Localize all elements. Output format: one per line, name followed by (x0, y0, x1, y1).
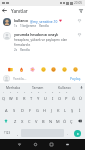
button[interactable]: 5 (28, 91, 35, 103)
button[interactable]: 0 (63, 91, 70, 103)
button[interactable]: Back (0, 6, 9, 15)
staticText: H (43, 108, 46, 113)
button[interactable]: yorumda hesabınızı onaylı (0, 30, 85, 54)
button[interactable]: F (26, 103, 34, 115)
button[interactable]: Back (11, 139, 27, 150)
button[interactable]: Tamam (25, 83, 51, 91)
staticText: @my_sensitive.10 (30, 19, 58, 23)
button[interactable]: Emoji (61, 66, 67, 72)
button[interactable]: Recents (43, 139, 59, 150)
button[interactable]: Ğ (70, 91, 77, 103)
staticText: 5 (31, 91, 33, 94)
button[interactable]: Emoji (50, 66, 56, 72)
staticText: G (36, 108, 39, 113)
button[interactable]: Emoji (72, 66, 78, 72)
button[interactable]: H (41, 103, 48, 115)
staticText: 1 (3, 91, 5, 94)
staticText: . (67, 131, 69, 136)
staticText: Tamam (32, 85, 44, 89)
button[interactable]: 2 (7, 91, 14, 103)
staticText: kullanıcı (14, 18, 29, 23)
button[interactable]: B (40, 115, 47, 127)
button[interactable]: Voice input (77, 83, 85, 91)
staticText: N (49, 119, 53, 124)
staticText: ?123 (4, 131, 11, 135)
staticText: hesaplara, yüksek ve paylaşımı olan (14, 38, 68, 42)
staticText: A (5, 108, 8, 113)
button[interactable]: İ (76, 103, 83, 115)
staticText: , (17, 131, 19, 136)
staticText: D (21, 108, 24, 113)
button[interactable]: Backspace (75, 115, 85, 127)
button[interactable]: Paylaş (69, 75, 82, 82)
button[interactable]: ?123 (1, 127, 14, 139)
button[interactable]: Filter (76, 6, 85, 15)
button[interactable]: S (10, 103, 18, 115)
button[interactable]: Like (77, 18, 82, 23)
button[interactable]: G (34, 103, 41, 115)
button[interactable]: Emoji (7, 66, 13, 72)
staticText: İ (79, 108, 81, 113)
button[interactable]: Emoji (18, 66, 24, 72)
button[interactable]: Shift (0, 115, 11, 127)
staticText: B (42, 119, 45, 124)
staticText: yorumda hesabınızı onaylı (14, 32, 59, 37)
staticText: Ç (70, 119, 73, 124)
button[interactable]: Comma (14, 127, 21, 139)
button[interactable]: Home (27, 139, 43, 150)
button[interactable]: V (33, 115, 40, 127)
button[interactable]: Emoji (40, 66, 46, 72)
staticText: Kullanıcı (58, 85, 71, 89)
button[interactable]: C (26, 115, 33, 127)
button[interactable]: J (48, 103, 55, 115)
staticText: M (56, 119, 60, 124)
staticText: Ö (63, 119, 67, 124)
button[interactable]: Ö (61, 115, 68, 127)
button[interactable]: Emoji (29, 66, 35, 72)
button[interactable]: A (2, 103, 10, 115)
button[interactable]: kullanıcı (0, 16, 85, 30)
button[interactable]: 7 (42, 91, 49, 103)
staticText: E (16, 96, 19, 101)
staticText: Q (2, 96, 6, 101)
staticText: Yanıtla... (13, 76, 69, 81)
staticText: 9 (59, 91, 61, 94)
staticText: 6 (38, 91, 40, 94)
button[interactable]: 9 (56, 91, 63, 103)
button[interactable]: Ü (77, 91, 84, 103)
staticText: F (29, 108, 32, 113)
button[interactable]: K (55, 103, 62, 115)
staticText: X (21, 119, 24, 124)
button[interactable]: N (47, 115, 54, 127)
staticText: 8 (52, 91, 54, 94)
button[interactable]: Ş (69, 103, 76, 115)
staticText: K (57, 108, 60, 113)
staticText: Paylaş (70, 76, 81, 81)
staticText: J (51, 108, 53, 113)
button[interactable]: L (62, 103, 69, 115)
staticText: Ğ (72, 96, 75, 101)
staticText: Y (37, 96, 40, 101)
staticText: 20:05 (74, 1, 83, 5)
button[interactable]: 3 (14, 91, 21, 103)
button[interactable]: M (54, 115, 61, 127)
button[interactable]: Ç (68, 115, 75, 127)
button[interactable]: 4 (21, 91, 28, 103)
staticText: 1s (14, 24, 18, 28)
staticText: I (52, 96, 54, 101)
button[interactable]: Send (71, 127, 84, 139)
button[interactable]: X (19, 115, 26, 127)
button[interactable]: Z (11, 115, 19, 127)
button[interactable]: D (18, 103, 26, 115)
staticText: P (65, 96, 68, 101)
button[interactable]: 6 (35, 91, 42, 103)
button[interactable]: 1 (1, 91, 7, 103)
button[interactable]: 8 (49, 91, 56, 103)
button[interactable]: Kullanıcı (51, 83, 77, 91)
staticText: V (35, 119, 38, 124)
button[interactable]: Hide keyboard (59, 139, 75, 150)
button[interactable]: Like (77, 32, 82, 37)
button[interactable]: Merhaba (0, 83, 25, 91)
